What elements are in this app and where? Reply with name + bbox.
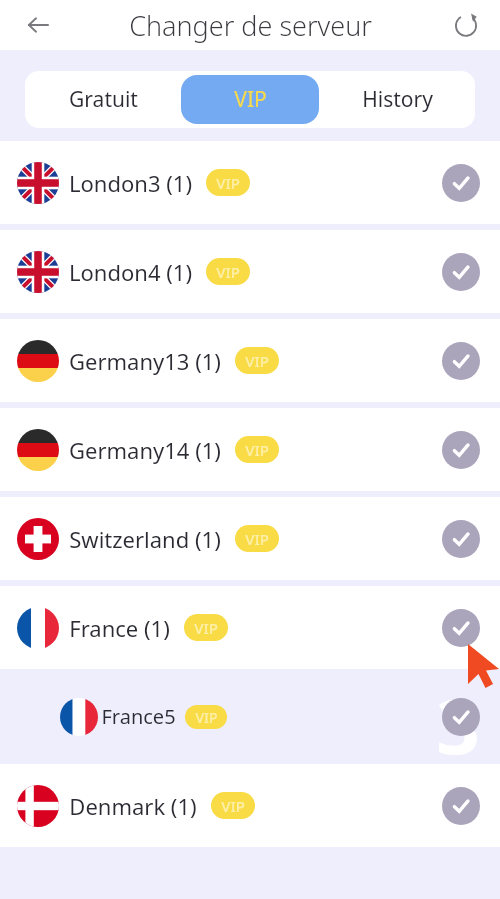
staticText: Denmark (1) bbox=[69, 791, 197, 821]
staticText: VIP bbox=[195, 708, 218, 727]
staticText: London4 (1) bbox=[69, 257, 192, 287]
button[interactable]: Selected bbox=[442, 520, 480, 558]
staticText: Gratuit bbox=[69, 85, 138, 114]
staticText: Switzerland (1) bbox=[69, 524, 221, 554]
button[interactable]: Gratuit bbox=[25, 71, 181, 128]
button[interactable]: Selected bbox=[442, 698, 480, 736]
staticText: Germany13 (1) bbox=[69, 346, 221, 376]
staticText: 3 bbox=[436, 673, 480, 756]
staticText: VIP bbox=[234, 85, 267, 114]
staticText: VIP bbox=[221, 796, 245, 816]
button[interactable]: Back bbox=[16, 3, 60, 47]
button[interactable]: Selected bbox=[442, 253, 480, 291]
staticText: VIP bbox=[245, 529, 269, 549]
button[interactable]: 3 bbox=[0, 675, 500, 758]
button[interactable]: Switzerland (1) bbox=[0, 497, 500, 580]
staticText: VIP bbox=[216, 173, 240, 193]
staticText: VIP bbox=[245, 351, 269, 371]
button[interactable]: London3 (1) bbox=[0, 141, 500, 224]
staticText: History bbox=[362, 85, 433, 114]
staticText: France5 bbox=[101, 703, 176, 730]
button[interactable]: Refresh bbox=[444, 3, 488, 47]
button[interactable]: Selected bbox=[442, 787, 480, 825]
staticText: VIP bbox=[194, 618, 218, 638]
staticText: Germany14 (1) bbox=[69, 435, 221, 465]
staticText: London3 (1) bbox=[69, 168, 192, 198]
staticText: France (1) bbox=[69, 613, 170, 643]
button[interactable]: Selected bbox=[442, 609, 480, 647]
button[interactable]: VIP bbox=[181, 75, 319, 124]
staticText: VIP bbox=[245, 440, 269, 460]
button[interactable]: London4 (1) bbox=[0, 230, 500, 313]
button[interactable]: France (1) bbox=[0, 586, 500, 669]
staticText: VIP bbox=[216, 262, 240, 282]
button[interactable]: Germany14 (1) bbox=[0, 408, 500, 491]
staticText: Changer de serveur bbox=[129, 7, 372, 44]
button[interactable]: Selected bbox=[442, 342, 480, 380]
button[interactable]: Germany13 (1) bbox=[0, 319, 500, 402]
button[interactable]: Denmark (1) bbox=[0, 764, 500, 847]
button[interactable]: Selected bbox=[442, 431, 480, 469]
button[interactable]: History bbox=[319, 71, 475, 128]
button[interactable]: Selected bbox=[442, 164, 480, 202]
